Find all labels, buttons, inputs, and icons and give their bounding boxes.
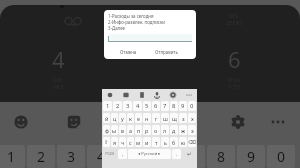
button[interactable]: б (170, 137, 178, 147)
button[interactable]: 2 (27, 145, 55, 168)
button[interactable]: Emoji (10, 111, 32, 133)
button[interactable]: Key 6 (208, 44, 260, 91)
button[interactable]: ф (103, 125, 110, 135)
button[interactable]: 7 (177, 145, 205, 168)
button[interactable]: Settings (227, 111, 249, 133)
button[interactable]: и (143, 137, 151, 147)
button[interactable]: д (170, 125, 178, 135)
staticText: 1-Расходы за сегодня (108, 13, 154, 19)
button[interactable]: , (118, 149, 127, 159)
staticText: э (191, 127, 194, 134)
staticText: ю (181, 139, 186, 146)
staticText: в (121, 127, 125, 134)
staticText: Отправить (155, 49, 178, 55)
staticText: л (163, 127, 167, 134)
staticText: 6 (157, 147, 166, 166)
staticText: 1 (7, 147, 16, 166)
button[interactable]: ю (179, 137, 187, 147)
staticText: , (122, 151, 124, 158)
button[interactable]: я (111, 137, 118, 147)
button[interactable]: 8 (170, 101, 178, 111)
button[interactable]: х (188, 113, 196, 123)
button[interactable]: 3 (123, 101, 132, 111)
button[interactable]: ц (111, 113, 118, 123)
button[interactable]: е (135, 113, 142, 123)
button[interactable]: ↵ (182, 149, 196, 159)
button[interactable]: 9 (237, 145, 265, 168)
staticText: 4 (97, 147, 106, 166)
staticText: РСТУ (228, 84, 241, 91)
button[interactable]: . (172, 149, 181, 159)
button[interactable]: о (152, 125, 160, 135)
button[interactable]: Emoji (106, 91, 114, 99)
button[interactable]: Stickers (63, 111, 85, 133)
button[interactable]: к (127, 113, 134, 123)
button[interactable]: с (127, 137, 134, 147)
staticText: 4 (136, 102, 140, 110)
button[interactable]: Clipboard (138, 91, 146, 99)
button[interactable]: п (135, 125, 142, 135)
staticText: 8 (217, 147, 226, 166)
button[interactable]: Отправить (152, 46, 181, 58)
staticText: 4 (52, 44, 65, 74)
button[interactable]: 7 (161, 101, 169, 111)
staticText: д (172, 127, 176, 134)
button[interactable]: ь (161, 137, 169, 147)
staticText: 3 (126, 102, 130, 110)
staticText: щ (172, 115, 177, 122)
button[interactable]: з (179, 113, 187, 123)
button[interactable]: ⌫ (188, 137, 196, 147)
button[interactable]: ⇧ (103, 137, 110, 147)
button[interactable]: щ (170, 113, 178, 123)
staticText: ф (105, 127, 109, 134)
button[interactable]: н (143, 113, 151, 123)
button[interactable]: г (152, 113, 160, 123)
button[interactable]: а (127, 125, 134, 135)
button[interactable]: ш (161, 113, 169, 123)
button[interactable]: 9 (179, 101, 187, 111)
button[interactable]: 8 (207, 145, 235, 168)
button[interactable]: ч (119, 137, 126, 147)
staticText: а (129, 127, 132, 134)
button[interactable]: More (185, 91, 193, 99)
button[interactable]: 0 (188, 101, 196, 111)
staticText: ⇧ (104, 139, 109, 145)
staticText: к (129, 115, 132, 122)
button[interactable]: Key 4 (32, 44, 84, 91)
button[interactable]: у (119, 113, 126, 123)
button[interactable]: 1 (0, 145, 25, 168)
button[interactable]: 0 (267, 145, 295, 168)
button[interactable]: ◂ Русский ▸ (128, 149, 171, 159)
button[interactable]: й (103, 113, 110, 123)
button[interactable]: Отмена (117, 46, 140, 58)
button[interactable]: ы (111, 125, 118, 135)
staticText: с (129, 139, 132, 146)
button[interactable]: 2 (113, 101, 122, 111)
button[interactable]: 5 (143, 101, 151, 111)
staticText: ы (112, 127, 117, 134)
button[interactable]: GIF (122, 91, 130, 99)
staticText: м (136, 139, 141, 146)
button[interactable]: в (119, 125, 126, 135)
button[interactable]: Voice input (153, 91, 161, 99)
button[interactable]: т (152, 137, 160, 147)
button[interactable]: м (135, 137, 142, 147)
staticText: ь (164, 139, 167, 146)
button[interactable]: 5 (117, 145, 145, 168)
button[interactable]: ?123 (103, 149, 117, 159)
button[interactable]: Keyboard settings (169, 91, 177, 99)
staticText: MNO (228, 77, 241, 84)
button[interactable]: 4 (87, 145, 115, 168)
button[interactable]: 1 (103, 101, 112, 111)
button[interactable]: 4 (133, 101, 142, 111)
button[interactable]: ж (179, 125, 187, 135)
staticText: е (137, 115, 140, 122)
button[interactable]: More options (267, 111, 289, 133)
button[interactable]: 3 (57, 145, 85, 168)
button[interactable]: л (161, 125, 169, 135)
button[interactable]: 6 (152, 101, 160, 111)
button[interactable]: 6 (147, 145, 175, 168)
button[interactable]: р (143, 125, 151, 135)
button[interactable]: э (188, 125, 196, 135)
